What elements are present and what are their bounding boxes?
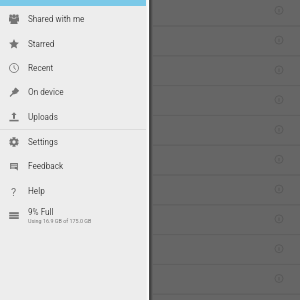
staticText: Starred [28,39,55,49]
staticText: On device [28,87,64,97]
staticText: ? [11,186,17,196]
button[interactable]: ? [0,179,149,203]
button[interactable]: Shared with me [0,7,149,31]
staticText: Settings [28,137,58,147]
button[interactable]: On device [0,80,149,104]
staticText: 9% Full [28,207,54,217]
button[interactable]: Settings [0,130,149,154]
staticText: Recent [28,63,54,73]
staticText: Uploads [28,112,58,122]
button[interactable]: 9% Full [0,203,149,227]
staticText: Feedback [28,161,64,171]
button[interactable]: Recent [0,56,149,80]
button[interactable]: Uploads [0,105,149,129]
staticText: Using 16.9 GB of 175.0 GB [28,218,92,224]
staticText: Help [28,186,45,196]
button[interactable]: Starred [0,32,149,56]
staticText: Shared with me [28,14,85,24]
button[interactable]: Feedback [0,154,149,178]
